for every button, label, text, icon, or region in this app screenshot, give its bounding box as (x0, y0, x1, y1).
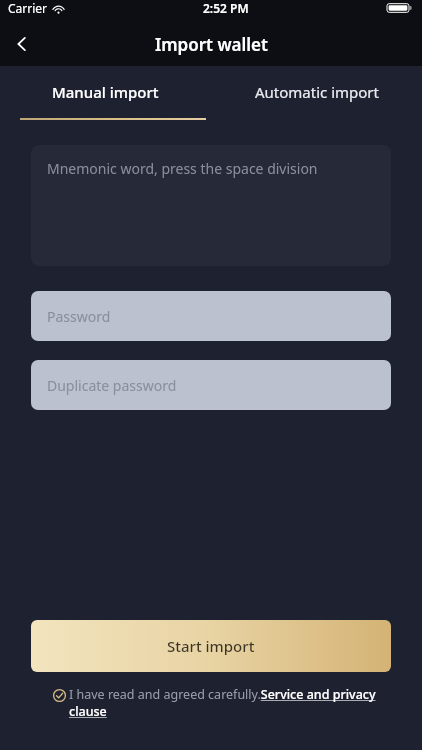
button[interactable]: Back (0, 22, 44, 66)
button[interactable]: Password (31, 291, 391, 341)
staticText: I have read and agreed carefully.Service… (69, 686, 394, 720)
staticText: Mnemonic word, press the space division (47, 159, 318, 178)
button[interactable]: Mnemonic word, press the space division (31, 145, 391, 266)
button[interactable]: I have read and agreed carefully.Service… (53, 686, 394, 720)
button[interactable]: Duplicate password (31, 360, 391, 410)
staticText: Duplicate password (47, 376, 177, 395)
staticText: Import wallet (155, 33, 268, 56)
staticText: Carrier (8, 0, 48, 16)
staticText: Password (47, 307, 111, 326)
button[interactable]: Automatic import (211, 66, 422, 118)
button[interactable]: Manual import (0, 66, 211, 118)
staticText: Start import (167, 636, 255, 656)
button[interactable]: Start import (31, 620, 391, 672)
staticText: 2:52 PM (203, 0, 249, 16)
staticText: Manual import (52, 82, 159, 102)
staticText: Automatic import (255, 82, 379, 102)
